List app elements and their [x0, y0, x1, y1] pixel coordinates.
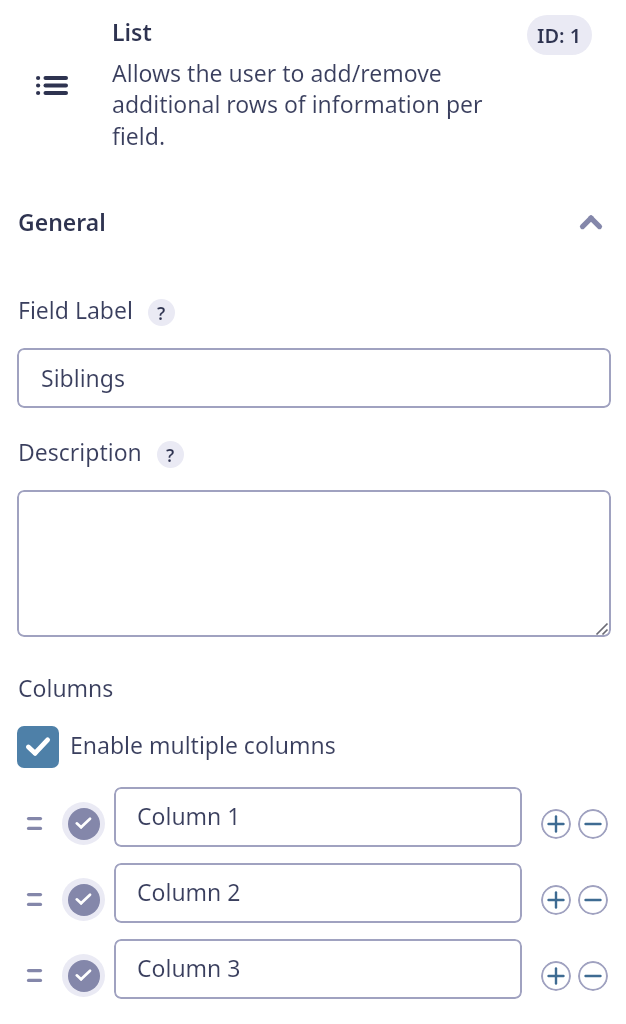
button[interactable]: Siblings: [17, 348, 611, 408]
button[interactable]: Column 3: [114, 939, 522, 999]
button[interactable]: Enable multiple columns: [17, 726, 336, 768]
button[interactable]: Remove column: [578, 809, 608, 839]
button[interactable]: Toggle column: [62, 802, 105, 845]
button[interactable]: [17, 490, 611, 637]
button[interactable]: Collapse General section: [580, 207, 602, 235]
button[interactable]: Column 2: [114, 863, 522, 923]
button[interactable]: ID: 1: [527, 15, 592, 55]
staticText: Enable multiple columns: [70, 729, 336, 760]
button[interactable]: Add column: [541, 809, 571, 839]
button[interactable]: Reorder: [27, 805, 42, 841]
button[interactable]: Add column: [541, 885, 571, 915]
staticText: Siblings: [41, 362, 125, 393]
button[interactable]: Reorder: [27, 881, 42, 917]
staticText: Columns: [18, 672, 114, 703]
staticText: General: [18, 206, 106, 237]
button[interactable]: Remove column: [578, 961, 608, 991]
button[interactable]: Help for Field Label: [148, 299, 175, 326]
staticText: Allows the user to add/remove additional…: [112, 57, 490, 152]
button[interactable]: Toggle column: [62, 878, 105, 921]
button[interactable]: Reorder: [27, 957, 42, 993]
staticText: Description: [18, 436, 142, 467]
staticText: Column 3: [137, 952, 241, 983]
button[interactable]: General: [0, 195, 626, 247]
button[interactable]: Remove column: [578, 885, 608, 915]
button[interactable]: Column 1: [114, 787, 522, 847]
button[interactable]: Help for Description: [157, 441, 184, 468]
staticText: List: [112, 16, 152, 47]
staticText: Field Label: [18, 294, 133, 325]
button[interactable]: Add column: [541, 961, 571, 991]
button[interactable]: Toggle column: [62, 954, 105, 997]
staticText: ?: [157, 301, 166, 326]
staticText: ?: [166, 443, 175, 468]
staticText: ID: 1: [537, 22, 582, 49]
staticText: Column 2: [137, 876, 241, 907]
staticText: Column 1: [137, 800, 241, 831]
